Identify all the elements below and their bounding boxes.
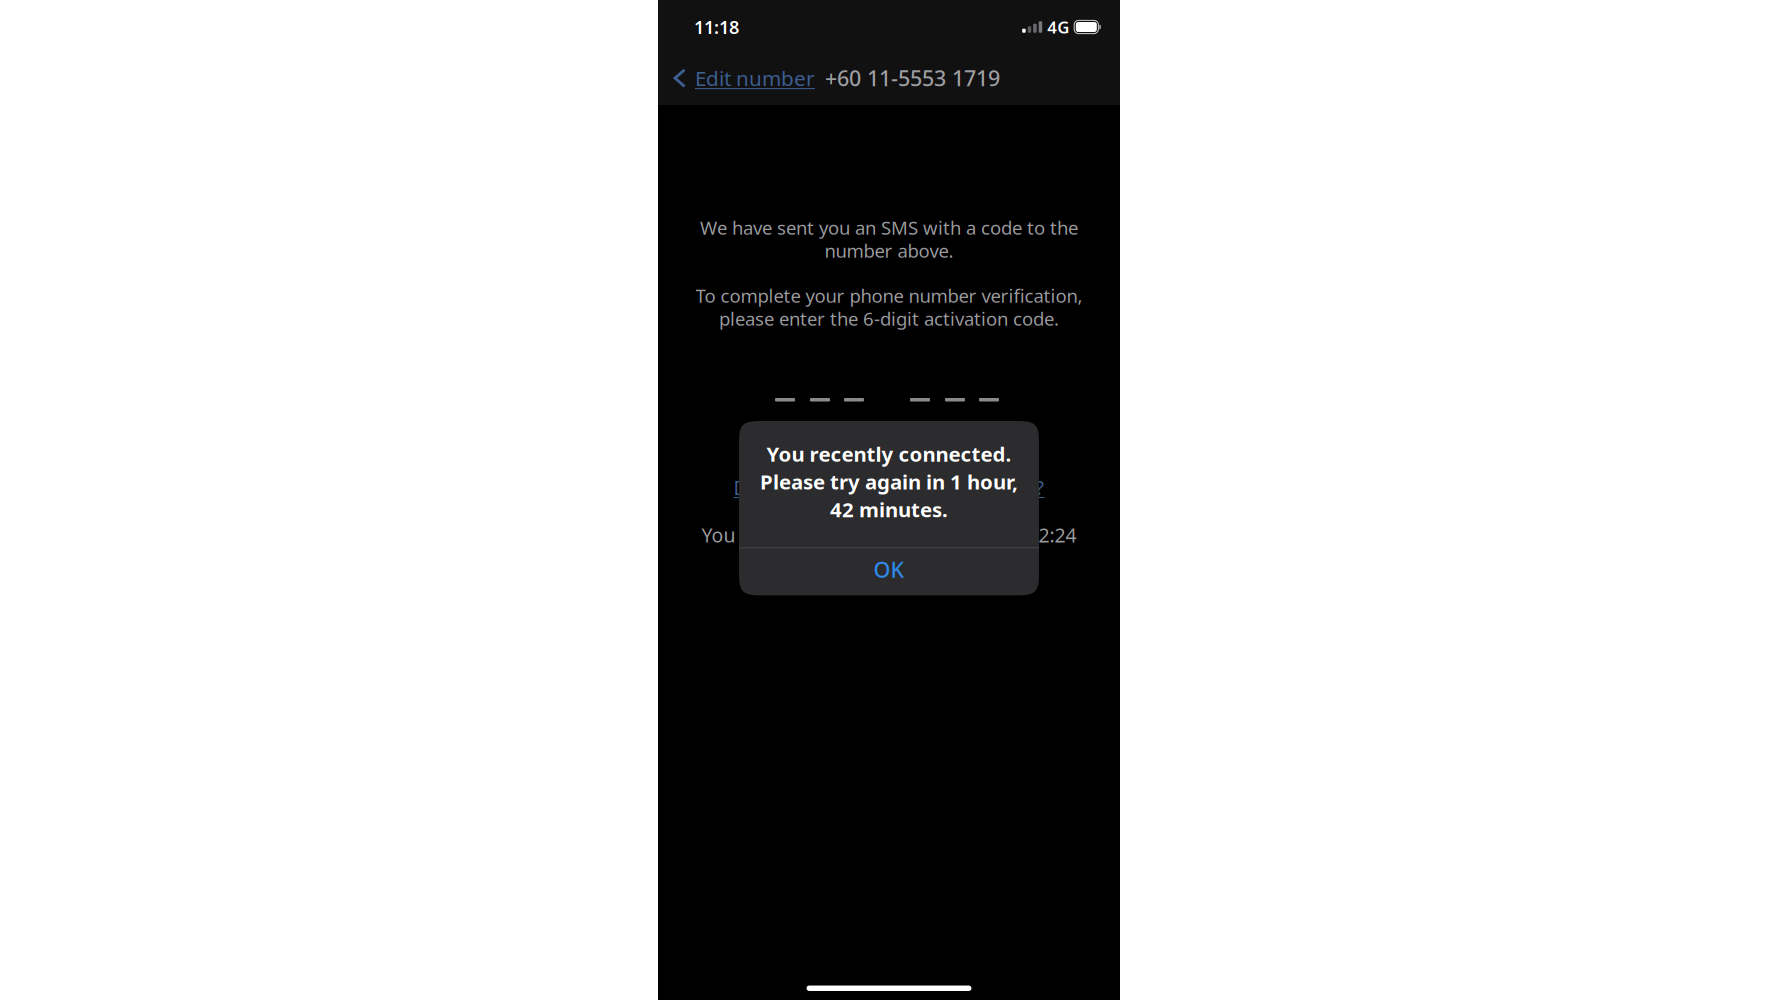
- staticText: 11:18: [694, 15, 739, 39]
- button[interactable]: OK: [739, 548, 1039, 595]
- staticText: number above.: [824, 238, 953, 263]
- staticText: +60 11-5553 1719: [825, 63, 1000, 93]
- staticText: 42 minutes.: [830, 496, 948, 523]
- button[interactable]: Didn't receive the activation code?: [733, 474, 1044, 500]
- staticText: 4G: [1047, 16, 1069, 38]
- button[interactable]: Edit number: [673, 64, 815, 92]
- staticText: OK: [873, 555, 904, 584]
- staticText: Please try again in 1 hour,: [760, 468, 1018, 496]
- staticText: We have sent you an SMS with a code to t…: [700, 215, 1078, 240]
- staticText: Edit number: [695, 64, 815, 92]
- staticText: Didn't receive the activation code?: [733, 474, 1044, 501]
- staticText: You can request a new code again in 2:24: [701, 522, 1076, 548]
- staticText: To complete your phone number verificati…: [695, 283, 1082, 308]
- staticText: please enter the 6-digit activation code…: [719, 306, 1059, 331]
- staticText: You recently connected.: [766, 440, 1011, 468]
